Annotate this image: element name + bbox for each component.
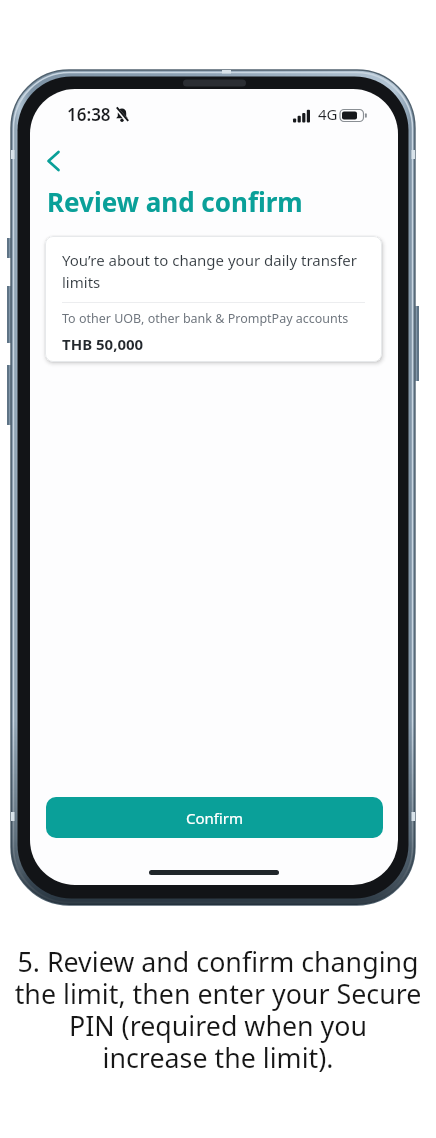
staticText: You’re about to change your daily transf… xyxy=(62,250,357,293)
staticText: 16:38 xyxy=(67,103,111,126)
button[interactable]: Confirm xyxy=(46,797,383,838)
staticText: To other UOB, other bank & PromptPay acc… xyxy=(62,310,349,327)
button[interactable] xyxy=(38,141,74,177)
staticText: 4G xyxy=(318,104,338,124)
staticText: 5. Review and confirm changing the limit… xyxy=(0,943,436,1076)
staticText: THB 50,000 xyxy=(62,334,144,354)
staticText: Review and confirm xyxy=(47,184,303,219)
staticText: Confirm xyxy=(186,808,244,828)
